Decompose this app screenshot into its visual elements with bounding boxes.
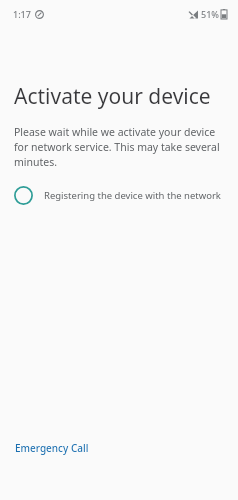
staticText: 1:17 <box>13 8 31 20</box>
staticText: Registering the device with the network <box>44 189 221 202</box>
staticText: 51% <box>201 8 219 20</box>
staticText: Please wait while we activate your devic… <box>14 125 226 169</box>
button[interactable]: Emergency Call <box>14 438 90 458</box>
staticText: Activate your device <box>14 82 211 111</box>
staticText: Emergency Call <box>15 441 89 455</box>
